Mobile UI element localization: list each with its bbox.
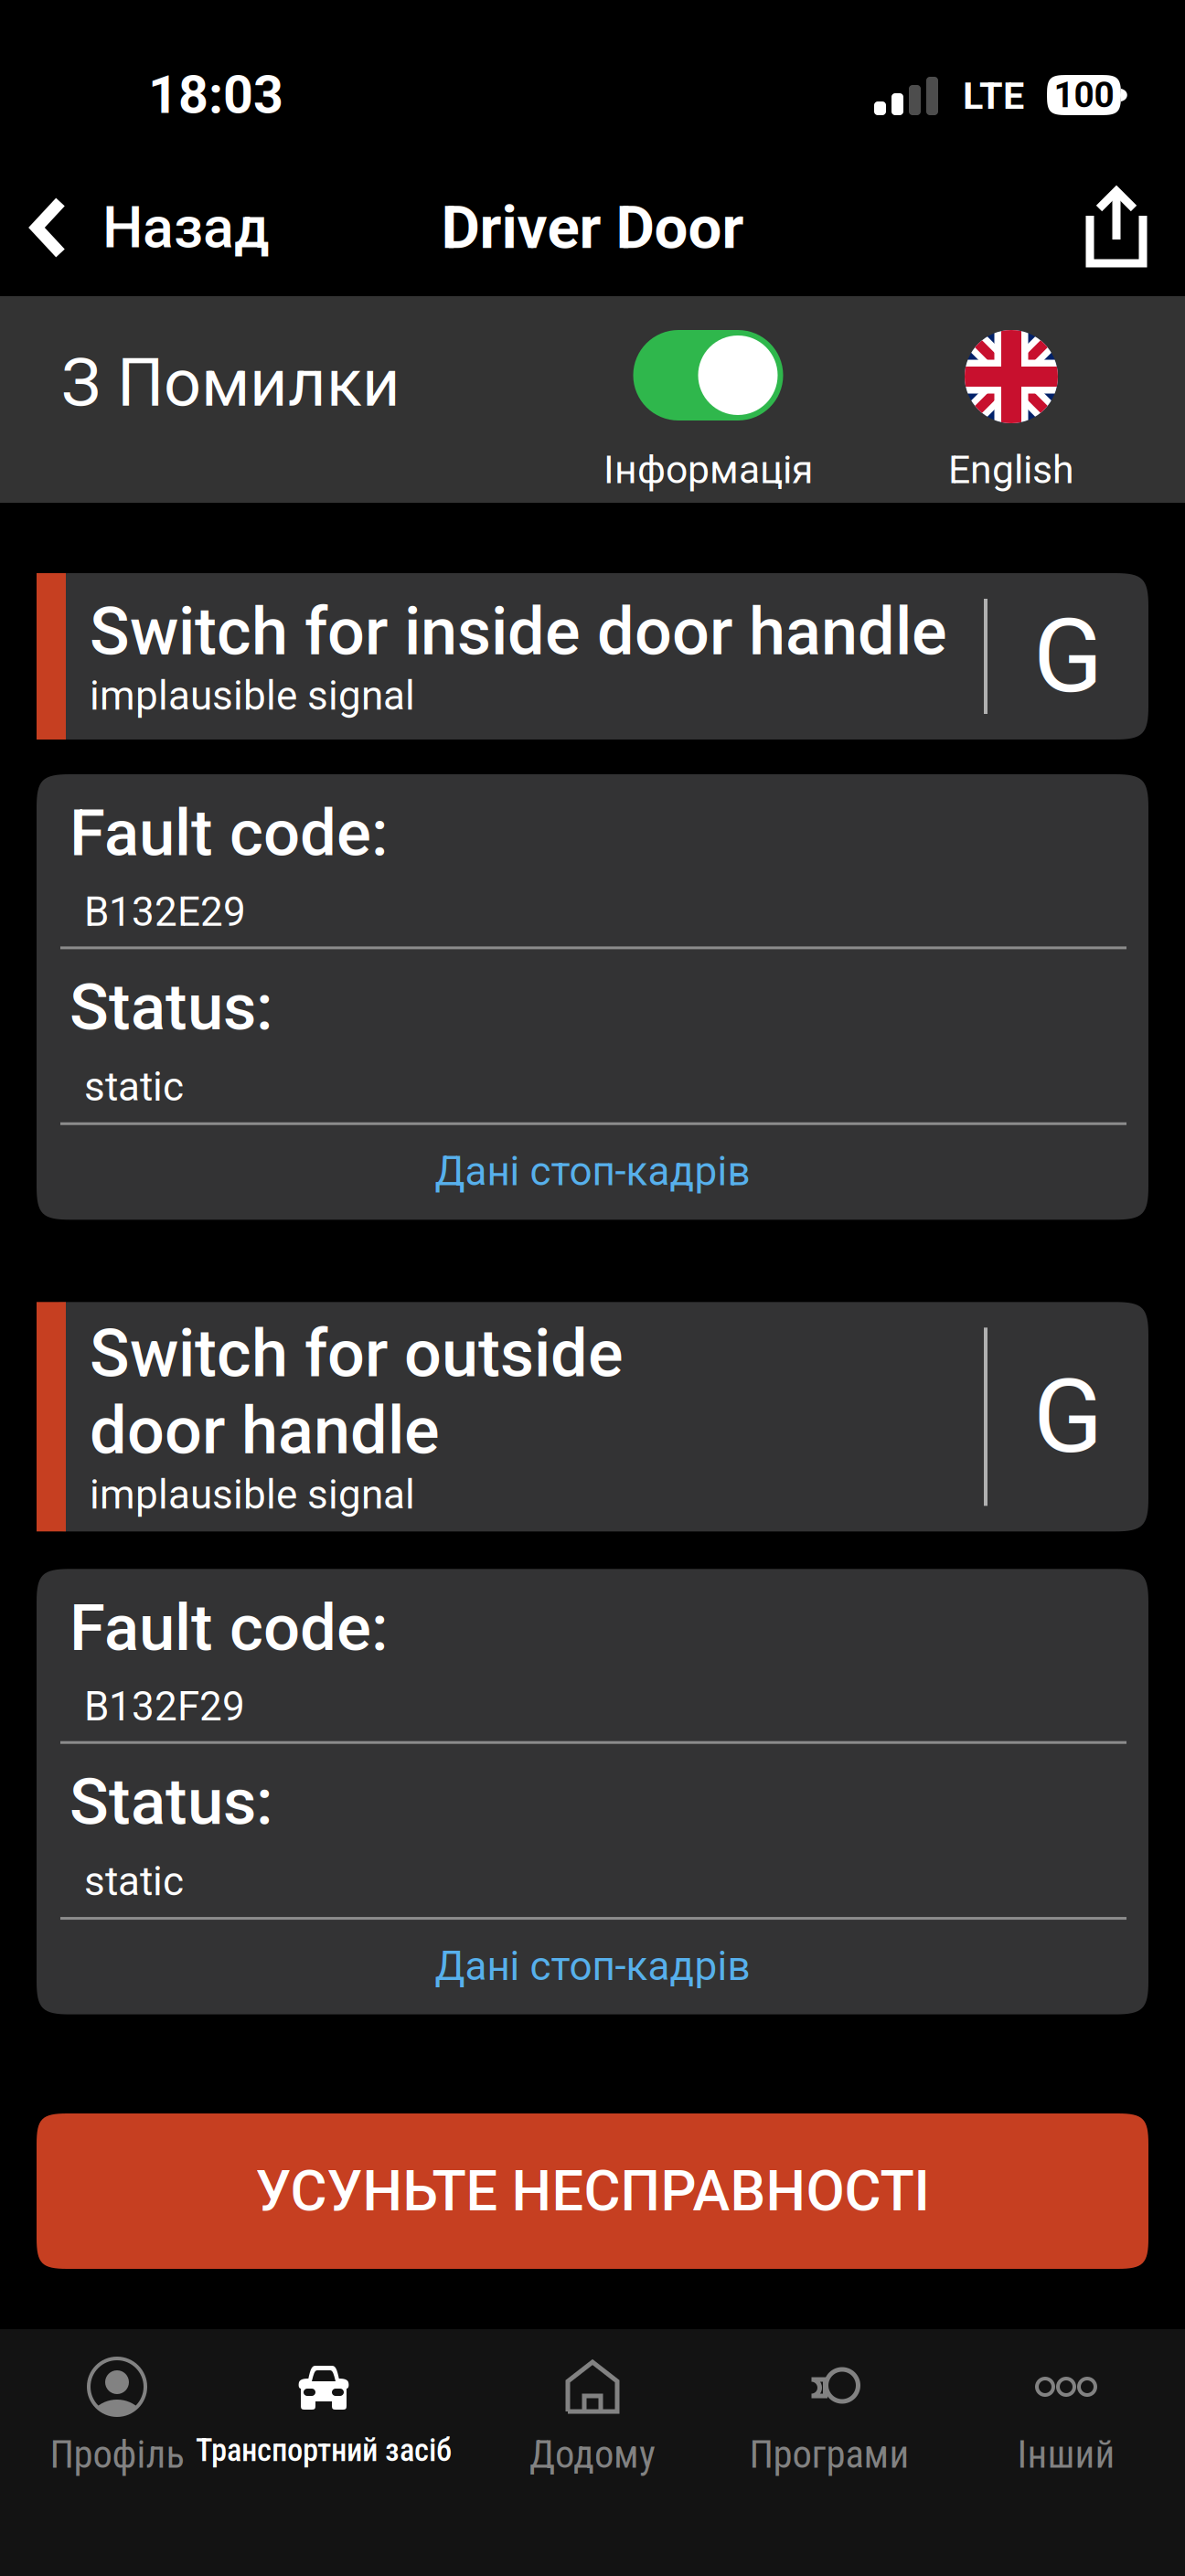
staticText: static bbox=[84, 1858, 184, 1905]
button[interactable]: Профіль bbox=[50, 2329, 184, 2499]
button[interactable]: УСУНЬТЕ НЕСПРАВНОСТІ bbox=[37, 2113, 1148, 2269]
staticText: English bbox=[948, 447, 1074, 493]
staticText: Fault code: bbox=[69, 1590, 389, 1666]
staticText: B132F29 bbox=[84, 1683, 245, 1730]
staticText: G bbox=[1033, 1357, 1103, 1477]
staticText: Дані стоп-кадрів bbox=[435, 1148, 750, 1195]
staticText: Транспортний засіб bbox=[196, 2432, 452, 2469]
staticText: Fault code: bbox=[69, 795, 389, 871]
staticText: Switch for outside door handle bbox=[90, 1315, 624, 1469]
staticText: Інший bbox=[1017, 2432, 1115, 2477]
staticText: Програми bbox=[749, 2432, 909, 2477]
button[interactable]: Дані стоп-кадрів bbox=[37, 1920, 1148, 2014]
staticText: Status: bbox=[69, 969, 273, 1045]
staticText: implausible signal bbox=[90, 672, 415, 719]
staticText: 18:03 bbox=[148, 64, 283, 126]
button[interactable]: Транспортний засіб bbox=[196, 2329, 452, 2491]
button[interactable]: Назад bbox=[0, 159, 292, 296]
button[interactable]: Програми bbox=[749, 2329, 909, 2499]
button[interactable]: Додому bbox=[529, 2329, 656, 2499]
staticText: Інформація bbox=[603, 447, 813, 493]
button[interactable]: Switch for outside door handle bbox=[37, 1302, 1148, 1531]
button[interactable]: Інший bbox=[1017, 2329, 1115, 2499]
staticText: Driver Door bbox=[441, 193, 744, 263]
staticText: G bbox=[1033, 596, 1103, 716]
staticText: Дані стоп-кадрів bbox=[435, 1943, 750, 1990]
staticText: З Помилки bbox=[61, 345, 400, 422]
staticText: Status: bbox=[69, 1764, 273, 1840]
staticText: Назад bbox=[102, 194, 270, 261]
button[interactable]: Switch for inside door handle bbox=[37, 573, 1148, 740]
staticText: Додому bbox=[529, 2432, 656, 2477]
staticText: Switch for inside door handle bbox=[90, 593, 947, 670]
button[interactable]: Інформація bbox=[603, 330, 813, 493]
button[interactable]: Share bbox=[1062, 159, 1185, 296]
button[interactable]: English bbox=[948, 330, 1074, 493]
staticText: B132E29 bbox=[84, 888, 246, 936]
staticText: implausible signal bbox=[90, 1471, 415, 1518]
staticText: 100 bbox=[1054, 74, 1114, 116]
button[interactable]: Дані стоп-кадрів bbox=[37, 1125, 1148, 1220]
staticText: LTE bbox=[963, 74, 1024, 118]
staticText: УСУНЬТЕ НЕСПРАВНОСТІ bbox=[256, 2158, 929, 2224]
staticText: static bbox=[84, 1063, 184, 1110]
staticText: Профіль bbox=[50, 2432, 184, 2477]
